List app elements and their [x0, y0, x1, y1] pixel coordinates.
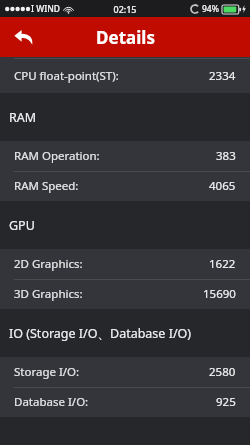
staticText: 2D Graphics:	[14, 256, 83, 272]
staticText: GPU	[9, 217, 35, 234]
staticText: 15690	[203, 286, 236, 302]
staticText: RAM Operation:	[14, 148, 100, 164]
staticText: Storage I/O:	[14, 364, 80, 380]
button[interactable]: 3D Graphics:	[0, 279, 250, 309]
staticText: 2334	[209, 68, 236, 84]
staticText: 925	[216, 394, 236, 410]
staticText: RAM	[9, 109, 37, 126]
staticText: 4065	[209, 178, 236, 194]
staticText: Database I/O:	[14, 394, 89, 410]
staticText: 383	[216, 148, 236, 164]
button[interactable]: RAM Operation:	[0, 141, 250, 171]
staticText: 1622	[209, 256, 236, 272]
staticText: RAM Speed:	[14, 178, 79, 194]
staticText: IO (Storage I/O、Database I/O)	[9, 325, 192, 342]
button[interactable]: CPU float-point(ST):	[0, 58, 250, 93]
staticText: Details	[96, 26, 155, 49]
staticText: CPU float-point(ST):	[14, 68, 119, 84]
staticText: 3D Graphics:	[14, 286, 83, 302]
button[interactable]: RAM Speed:	[0, 171, 250, 201]
staticText: I WIND	[31, 3, 61, 15]
staticText: 94%	[202, 3, 219, 15]
button[interactable]: Back	[6, 20, 40, 54]
staticText: 02:15	[113, 3, 137, 15]
button[interactable]: 2D Graphics:	[0, 249, 250, 279]
button[interactable]: Storage I/O:	[0, 357, 250, 387]
staticText: 2580	[209, 364, 236, 380]
button[interactable]: Database I/O:	[0, 387, 250, 417]
